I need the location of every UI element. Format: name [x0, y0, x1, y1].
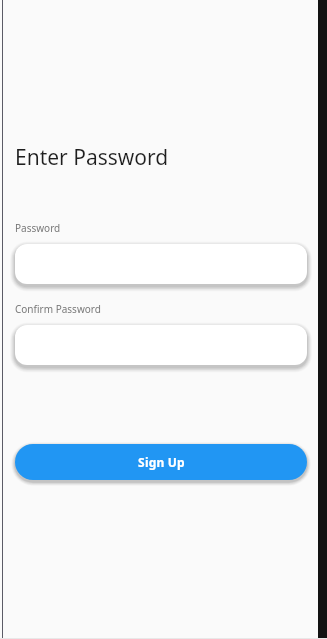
button[interactable] — [15, 244, 307, 284]
staticText: Password — [15, 221, 61, 235]
button[interactable] — [15, 325, 307, 365]
staticText: Sign Up — [138, 454, 185, 470]
button[interactable]: Sign Up — [15, 444, 307, 480]
staticText: Enter Password — [15, 143, 169, 172]
staticText: Confirm Password — [15, 302, 101, 316]
